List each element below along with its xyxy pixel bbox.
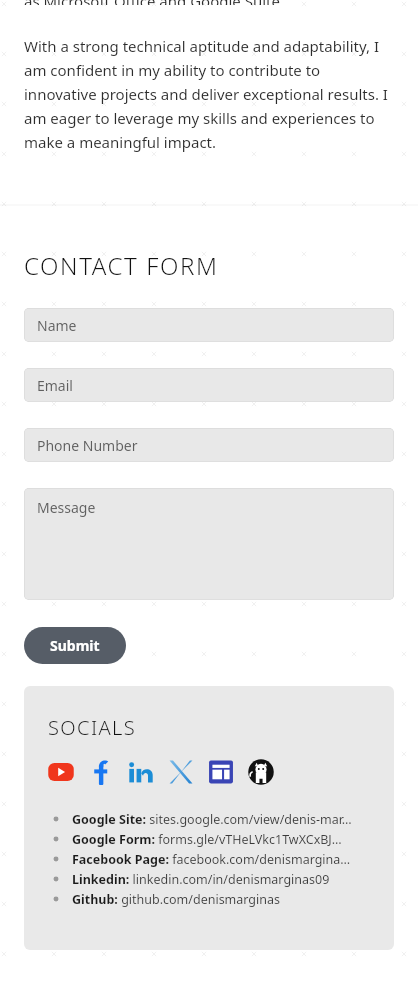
button[interactable]: Email: [24, 368, 394, 402]
button[interactable]: YouTube: [48, 759, 74, 785]
button[interactable]: X: [168, 759, 194, 785]
button[interactable]: Github: github.com/denismarginas: [24, 889, 394, 909]
staticText: CONTACT FORM: [24, 249, 219, 282]
staticText: Submit: [50, 636, 100, 655]
staticText: Phone Number: [37, 436, 138, 455]
button[interactable]: LinkedIn: [128, 759, 154, 785]
button[interactable]: Google Site: sites.google.com/view/denis…: [24, 809, 394, 829]
staticText: With a strong technical aptitude and ada…: [24, 36, 396, 152]
button[interactable]: Submit: [24, 627, 126, 664]
button[interactable]: Google Sites: [208, 759, 234, 785]
staticText: Message: [37, 498, 96, 517]
button[interactable]: Google Form: forms.gle/vTHeLVkc1TwXCxBJ…: [24, 829, 394, 849]
staticText: Google Site: sites.google.com/view/denis…: [72, 811, 352, 828]
button[interactable]: Name: [24, 308, 394, 342]
staticText: Name: [37, 316, 77, 335]
button[interactable]: Phone Number: [24, 428, 394, 462]
staticText: Google Form: forms.gle/vTHeLVkc1TwXCxBJ…: [72, 831, 342, 848]
staticText: Linkedin: linkedin.com/in/denismarginas0…: [72, 871, 330, 888]
staticText: Email: [37, 376, 73, 395]
button[interactable]: Facebook: [88, 759, 114, 785]
button[interactable]: Message: [24, 488, 394, 600]
staticText: SOCIALS: [48, 714, 137, 741]
staticText: Facebook Page: facebook.com/denismargina…: [72, 851, 351, 868]
staticText: Github: github.com/denismarginas: [72, 891, 280, 908]
button[interactable]: GitHub: [248, 759, 274, 785]
staticText: as Microsoft Office and Google Suite.: [24, 0, 284, 5]
button[interactable]: Linkedin: linkedin.com/in/denismarginas0…: [24, 869, 394, 889]
button[interactable]: Facebook Page: facebook.com/denismargina…: [24, 849, 394, 869]
